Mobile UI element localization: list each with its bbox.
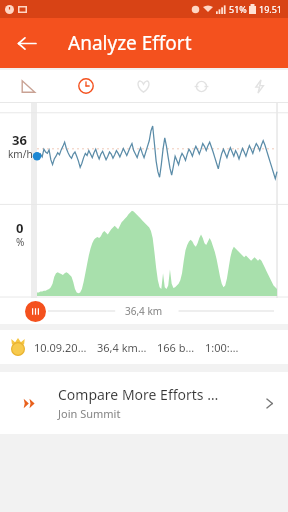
- staticText: Compare More Efforts …: [58, 385, 219, 404]
- staticText: 19.51: [259, 3, 283, 15]
- button[interactable]: Power: [230, 70, 288, 102]
- staticText: Join Summit: [58, 406, 121, 421]
- button[interactable]: 10.09.20…: [0, 330, 288, 364]
- staticText: 0: [16, 219, 24, 237]
- staticText: 36,4 km: [125, 304, 163, 318]
- staticText: km/h: [8, 147, 33, 161]
- staticText: 1:00:…: [205, 340, 239, 355]
- staticText: 51%: [229, 3, 247, 15]
- button[interactable]: Compare More Efforts …: [0, 372, 288, 434]
- button[interactable]: Heart rate: [114, 70, 172, 102]
- staticText: 10.09.20…: [34, 340, 87, 355]
- staticText: 36,4 km…: [97, 340, 147, 355]
- staticText: 166 b…: [157, 340, 195, 355]
- staticText: 36: [12, 131, 27, 149]
- button[interactable]: Back: [6, 23, 46, 63]
- button[interactable]: Time: [57, 70, 114, 102]
- staticText: Analyze Effort: [68, 30, 192, 56]
- button[interactable]: Elevation: [0, 70, 57, 102]
- button[interactable]: Scrub position: [25, 301, 46, 322]
- staticText: %: [16, 235, 25, 249]
- button[interactable]: Cadence: [172, 70, 230, 102]
